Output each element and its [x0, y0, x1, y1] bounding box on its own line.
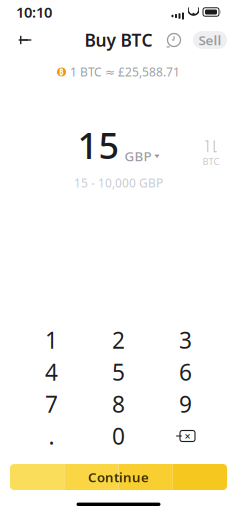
- button[interactable]: 1: [18, 324, 85, 356]
- button[interactable]: Back: [10, 25, 40, 55]
- staticText: .: [48, 421, 54, 451]
- button[interactable]: Switch to BTC: [191, 134, 231, 174]
- button[interactable]: 4: [18, 356, 85, 388]
- staticText: ×: [184, 429, 190, 443]
- button[interactable]: 8: [85, 388, 152, 420]
- staticText: 15: [77, 121, 119, 169]
- staticText: 4: [45, 357, 58, 387]
- button[interactable]: 5: [85, 356, 152, 388]
- staticText: 0: [112, 421, 125, 451]
- staticText: Sell: [198, 31, 221, 49]
- staticText: 10:10: [16, 2, 52, 22]
- staticText: 6: [179, 357, 192, 387]
- button[interactable]: Transaction history: [161, 25, 187, 55]
- button[interactable]: .: [18, 420, 85, 452]
- button[interactable]: 7: [18, 388, 85, 420]
- button[interactable]: 6: [152, 356, 219, 388]
- staticText: GBP: [124, 147, 151, 165]
- staticText: Buy BTC: [84, 28, 152, 51]
- button[interactable]: Delete: [152, 420, 219, 452]
- staticText: ₿: [59, 67, 64, 77]
- button[interactable]: 2: [85, 324, 152, 356]
- staticText: 1 BTC ≈ £25,588.71: [70, 64, 180, 80]
- button[interactable]: Sell: [193, 31, 227, 49]
- button[interactable]: Continue: [10, 464, 227, 490]
- staticText: 2: [112, 325, 125, 355]
- staticText: BTC: [202, 155, 219, 168]
- staticText: 9: [179, 389, 192, 419]
- staticText: 3: [179, 325, 192, 355]
- staticText: Continue: [88, 468, 149, 486]
- staticText: 7: [45, 389, 58, 419]
- button[interactable]: 9: [152, 388, 219, 420]
- staticText: 8: [112, 389, 125, 419]
- staticText: 5: [112, 357, 125, 387]
- staticText: 15 - 10,000 GBP: [74, 175, 163, 191]
- button[interactable]: 3: [152, 324, 219, 356]
- staticText: 1: [45, 325, 58, 355]
- button[interactable]: 0: [85, 420, 152, 452]
